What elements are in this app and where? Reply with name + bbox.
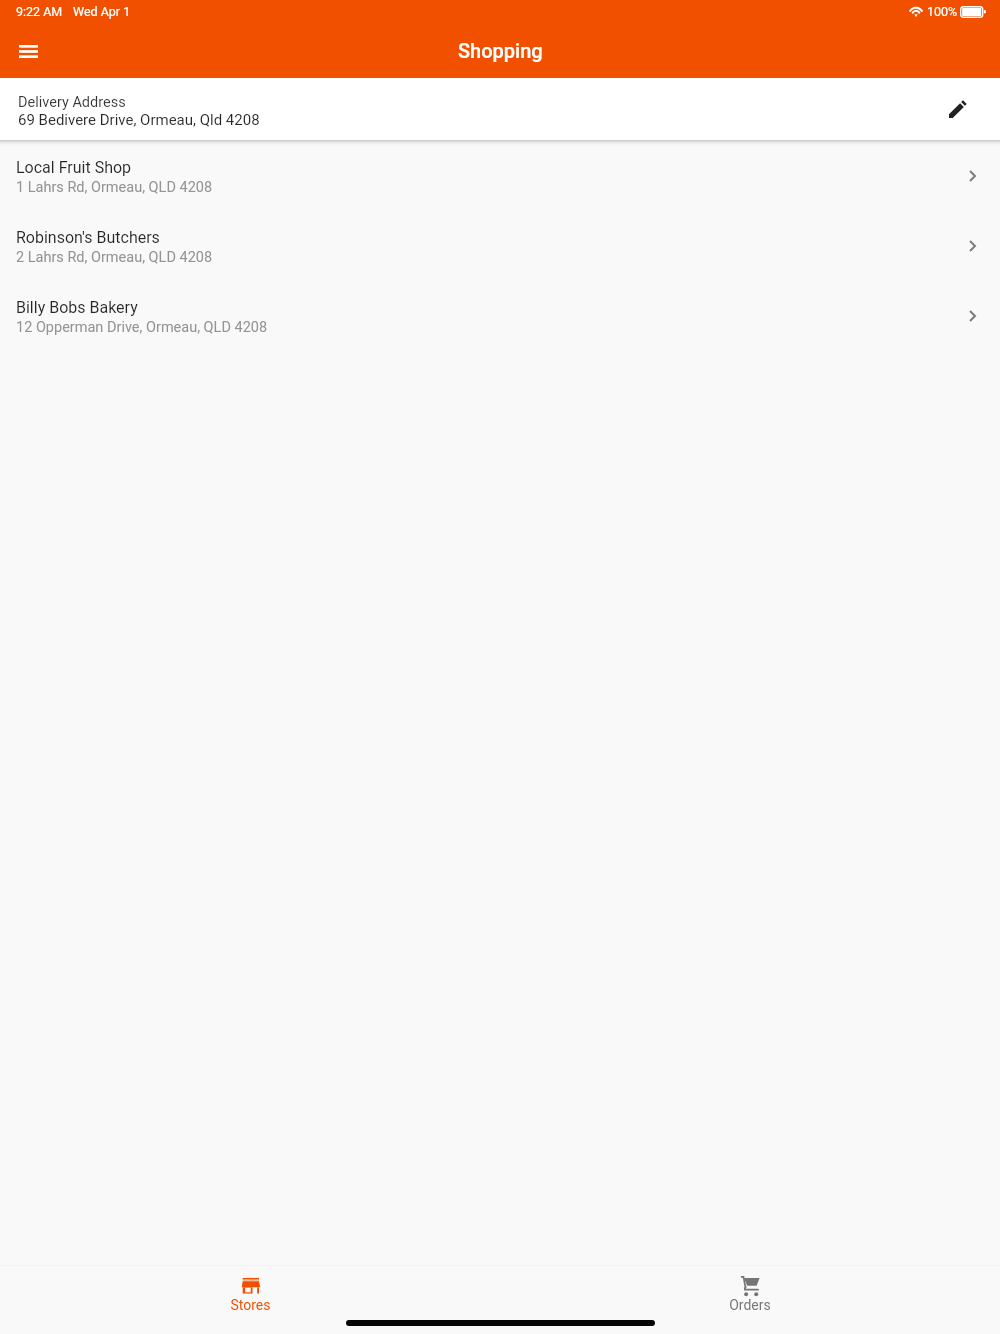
button[interactable]: Robinson's Butchers bbox=[0, 212, 1000, 282]
staticText: Shopping bbox=[458, 39, 543, 62]
button[interactable]: Edit delivery address bbox=[941, 92, 975, 126]
staticText: Delivery Address bbox=[18, 94, 126, 111]
button[interactable]: Delivery Address bbox=[0, 78, 1000, 140]
staticText: Billy Bobs Bakery bbox=[16, 298, 138, 317]
staticText: 2 Lahrs Rd, Ormeau, QLD 4208 bbox=[16, 249, 213, 266]
staticText: Stores bbox=[230, 1297, 271, 1313]
staticText: 1 Lahrs Rd, Ormeau, QLD 4208 bbox=[16, 179, 213, 196]
button[interactable]: Local Fruit Shop bbox=[0, 142, 1000, 212]
staticText: Wed Apr 1 bbox=[73, 4, 131, 19]
staticText: Robinson's Butchers bbox=[16, 228, 160, 247]
button[interactable]: Orders bbox=[703, 1276, 797, 1313]
staticText: 12 Opperman Drive, Ormeau, QLD 4208 bbox=[16, 319, 268, 336]
staticText: Local Fruit Shop bbox=[16, 158, 132, 177]
staticText: Orders bbox=[729, 1297, 771, 1313]
staticText: 100% bbox=[927, 4, 958, 19]
button[interactable]: Stores bbox=[204, 1276, 297, 1313]
staticText: 69 Bedivere Drive, Ormeau, Qld 4208 bbox=[18, 111, 260, 129]
button[interactable]: Billy Bobs Bakery bbox=[0, 282, 1000, 352]
staticText: 9:22 AM bbox=[16, 4, 63, 19]
button[interactable]: Open navigation menu bbox=[9, 32, 47, 70]
